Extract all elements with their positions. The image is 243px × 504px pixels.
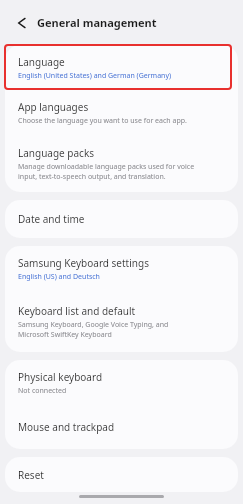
button[interactable] [13,15,29,31]
staticText: Keyboard list and default [18,304,136,318]
button[interactable]: App languages [5,91,238,135]
staticText: Language [18,55,65,69]
staticText: General management [37,15,157,30]
button[interactable]: Language packs [5,135,238,192]
button[interactable]: Physical keyboard [5,360,238,405]
staticText: Date and time [18,212,85,226]
button[interactable]: Keyboard list and default [5,292,238,352]
button[interactable]: Samsung Keyboard settings [5,246,238,292]
staticText: Reset [18,468,44,482]
staticText: Microsoft SwiftKey Keyboard [18,330,112,340]
staticText: English (US) and Deutsch [18,272,100,282]
staticText: Not connected [18,386,67,396]
staticText: English (United States) and German (Germ… [18,71,172,81]
staticText: input, text-to-speech output, and transl… [18,172,166,182]
staticText: Choose the language you want to use for … [18,116,187,126]
staticText: Physical keyboard [18,370,103,384]
staticText: Samsung Keyboard, Google Voice Typing, a… [18,320,169,330]
button[interactable]: Mouse and trackpad [5,405,238,449]
staticText: Mouse and trackpad [18,420,115,434]
staticText: Samsung Keyboard settings [18,256,149,270]
staticText: App languages [18,100,89,114]
staticText: Language packs [18,146,95,160]
button[interactable]: Reset [5,457,238,492]
staticText: Manage downloadable language packs used … [18,162,195,172]
button[interactable]: Language [5,45,238,91]
button[interactable]: Date and time [5,200,238,238]
